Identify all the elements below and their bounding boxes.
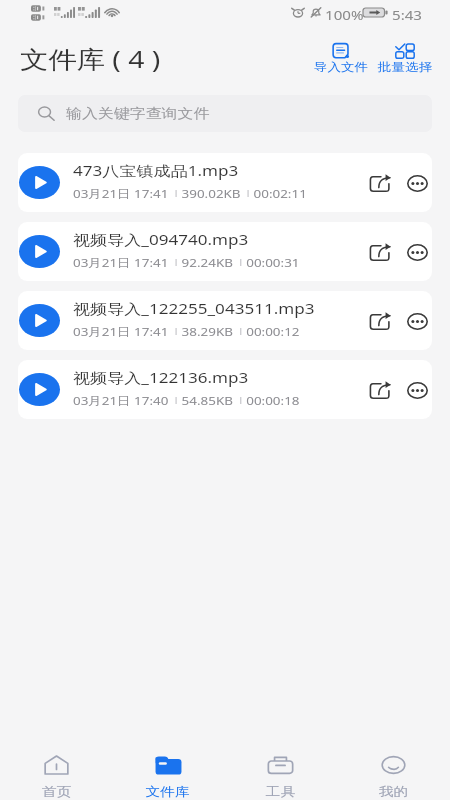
staticText: 00:00:18 (246, 393, 300, 408)
button[interactable]: 473八宝镇成品1.mp3 (18, 153, 432, 212)
staticText: 导入文件 (314, 60, 368, 74)
staticText: 473八宝镇成品1.mp3 (73, 161, 239, 180)
button[interactable]: Share (362, 305, 398, 337)
staticText: 00:00:31 (246, 255, 300, 270)
button[interactable]: 首页 (0, 738, 112, 800)
staticText: 工具 (266, 784, 295, 800)
staticText: 批量选择 (378, 60, 432, 74)
staticText: 38.29KB (182, 324, 234, 339)
staticText: 文件库 ( 4 ) (20, 42, 160, 75)
button[interactable]: 输入关键字查询文件 (18, 95, 432, 132)
staticText: 输入关键字查询文件 (66, 105, 210, 122)
staticText: 我的 (379, 784, 408, 800)
button[interactable]: More options (399, 167, 432, 199)
staticText: 5:43 (392, 6, 422, 24)
staticText: 390.02KB (182, 186, 241, 201)
button[interactable]: More options (399, 236, 432, 268)
staticText: 54.85KB (182, 393, 234, 408)
staticText: 文件库 (146, 784, 190, 800)
button[interactable]: 视频导入_122255_043511.mp3 (18, 291, 432, 350)
button[interactable]: Share (362, 167, 398, 199)
staticText: 92.24KB (182, 255, 234, 270)
staticText: 03月21日 17:41 (73, 255, 169, 270)
button[interactable]: More options (399, 374, 432, 406)
staticText: 视频导入_122136.mp3 (73, 368, 249, 387)
staticText: 首页 (42, 784, 71, 800)
staticText: 视频导入_094740.mp3 (73, 230, 249, 249)
button[interactable]: 工具 (224, 738, 337, 800)
button[interactable]: 导入文件 (313, 40, 369, 74)
button[interactable]: 我的 (337, 738, 450, 800)
staticText: 03月21日 17:41 (73, 186, 169, 201)
button[interactable]: 文件库 (112, 738, 224, 800)
staticText: 视频导入_122255_043511.mp3 (73, 299, 315, 318)
button[interactable]: 批量选择 (377, 40, 433, 74)
button[interactable]: Share (362, 236, 398, 268)
staticText: 03月21日 17:40 (73, 393, 169, 408)
button[interactable]: More options (399, 305, 432, 337)
staticText: 03月21日 17:41 (73, 324, 169, 339)
staticText: 100% (325, 6, 364, 24)
button[interactable]: Share (362, 374, 398, 406)
staticText: 00:02:11 (254, 186, 307, 201)
button[interactable]: 视频导入_094740.mp3 (18, 222, 432, 281)
staticText: 00:00:12 (246, 324, 300, 339)
button[interactable]: 视频导入_122136.mp3 (18, 360, 432, 419)
